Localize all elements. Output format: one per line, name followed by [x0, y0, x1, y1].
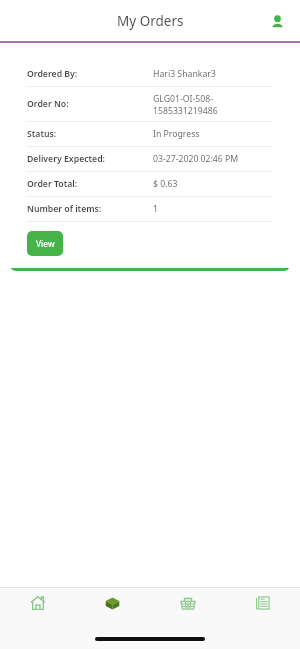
- staticText: Delivery Expected:: [27, 153, 153, 165]
- staticText: Hari3 Shankar3: [153, 68, 216, 80]
- staticText: 1: [153, 203, 158, 215]
- button[interactable]: Profile: [264, 8, 290, 34]
- staticText: Order No:: [27, 98, 153, 110]
- staticText: Order Total:: [27, 178, 153, 190]
- button[interactable]: Invoices: [225, 595, 300, 629]
- staticText: Ordered By:: [27, 68, 153, 80]
- staticText: $ 0.63: [153, 178, 178, 190]
- staticText: My Orders: [117, 12, 184, 30]
- button[interactable]: Home: [0, 595, 75, 629]
- staticText: Number of items:: [27, 203, 153, 215]
- staticText: Status:: [27, 128, 153, 140]
- button[interactable]: Ordered By:: [10, 53, 290, 271]
- staticText: GLG01-OI-508- 1585331219486: [153, 93, 218, 116]
- button[interactable]: Cart: [150, 595, 225, 629]
- staticText: 03-27-2020 02:46 PM: [153, 153, 239, 165]
- button[interactable]: Orders: [75, 595, 150, 629]
- staticText: View: [36, 238, 55, 250]
- button[interactable]: View: [27, 231, 63, 256]
- staticText: In Progress: [153, 128, 200, 140]
